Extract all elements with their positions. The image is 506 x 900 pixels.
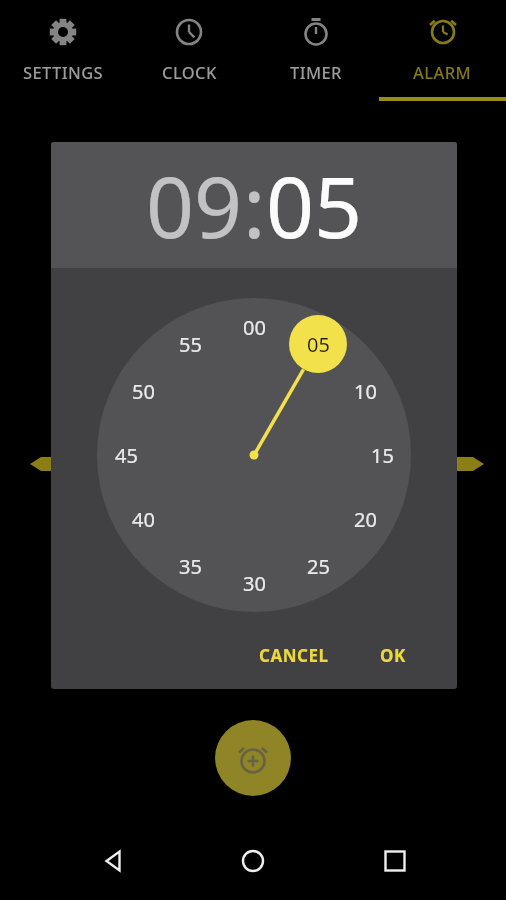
button[interactable]: ALARM (379, 0, 506, 101)
staticText: 50 (132, 378, 155, 405)
staticText: 35 (179, 553, 202, 580)
staticText: SETTINGS (23, 61, 104, 83)
button[interactable]: CLOCK (126, 0, 252, 101)
staticText: 00 (243, 314, 266, 341)
staticText: CANCEL (259, 644, 329, 667)
staticText: CLOCK (162, 61, 217, 83)
button[interactable] (215, 720, 291, 796)
staticText: 10 (354, 378, 377, 405)
button[interactable] (94, 841, 134, 881)
staticText: 40 (132, 506, 155, 533)
button[interactable]: OK (369, 637, 417, 673)
staticText: 55 (179, 331, 202, 358)
staticText: 45 (115, 442, 138, 469)
staticText: 25 (307, 553, 330, 580)
staticText: 30 (243, 570, 266, 597)
button[interactable]: SETTINGS (0, 0, 126, 101)
button[interactable] (375, 841, 415, 881)
staticText: OK (380, 644, 406, 667)
staticText: 09 (146, 148, 243, 262)
staticText: 15 (371, 442, 394, 469)
staticText: 05 (307, 331, 330, 358)
staticText: 20 (354, 506, 377, 533)
button[interactable]: TIMER (252, 0, 379, 101)
button[interactable] (233, 841, 273, 881)
staticText: ALARM (413, 61, 472, 83)
staticText: TIMER (290, 61, 342, 83)
staticText: 05 (266, 148, 363, 262)
button[interactable]: CANCEL (247, 637, 341, 673)
staticText: : (243, 148, 266, 262)
